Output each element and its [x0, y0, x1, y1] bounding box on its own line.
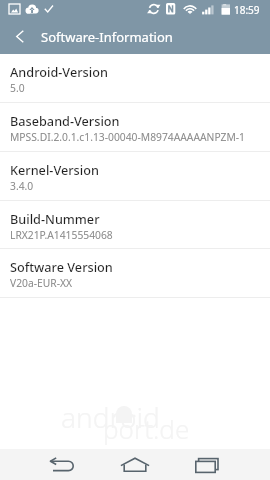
button[interactable]: Android-Version [0, 54, 270, 103]
button[interactable]: Home [99, 449, 171, 480]
staticText: 3.4.0 [10, 179, 34, 193]
staticText: V20a-EUR-XX [10, 276, 73, 290]
staticText: Android-Version [10, 63, 108, 80]
staticText: android [61, 398, 160, 436]
button[interactable]: Back [2, 18, 38, 54]
button[interactable]: Recent apps [171, 449, 243, 480]
staticText: 18:59 [234, 3, 260, 17]
staticText: port.de [103, 411, 190, 446]
staticText: Build-Nummer [10, 210, 100, 227]
button[interactable]: Software Version [0, 249, 270, 298]
staticText: MPSS.DI.2.0.1.c1.13-00040-M8974AAAAANPZM… [10, 130, 245, 144]
staticText: 5.0 [10, 81, 25, 95]
button[interactable]: Build-Nummer [0, 201, 270, 249]
staticText: Software-Information [41, 28, 173, 46]
staticText: Baseband-Version [10, 112, 120, 129]
staticText: Kernel-Version [10, 161, 99, 178]
staticText: LRX21P.A1415554068 [10, 228, 113, 242]
button[interactable]: Back [27, 449, 99, 480]
button[interactable]: Baseband-Version [0, 103, 270, 152]
staticText: Software Version [10, 258, 113, 275]
button[interactable]: Kernel-Version [0, 152, 270, 201]
